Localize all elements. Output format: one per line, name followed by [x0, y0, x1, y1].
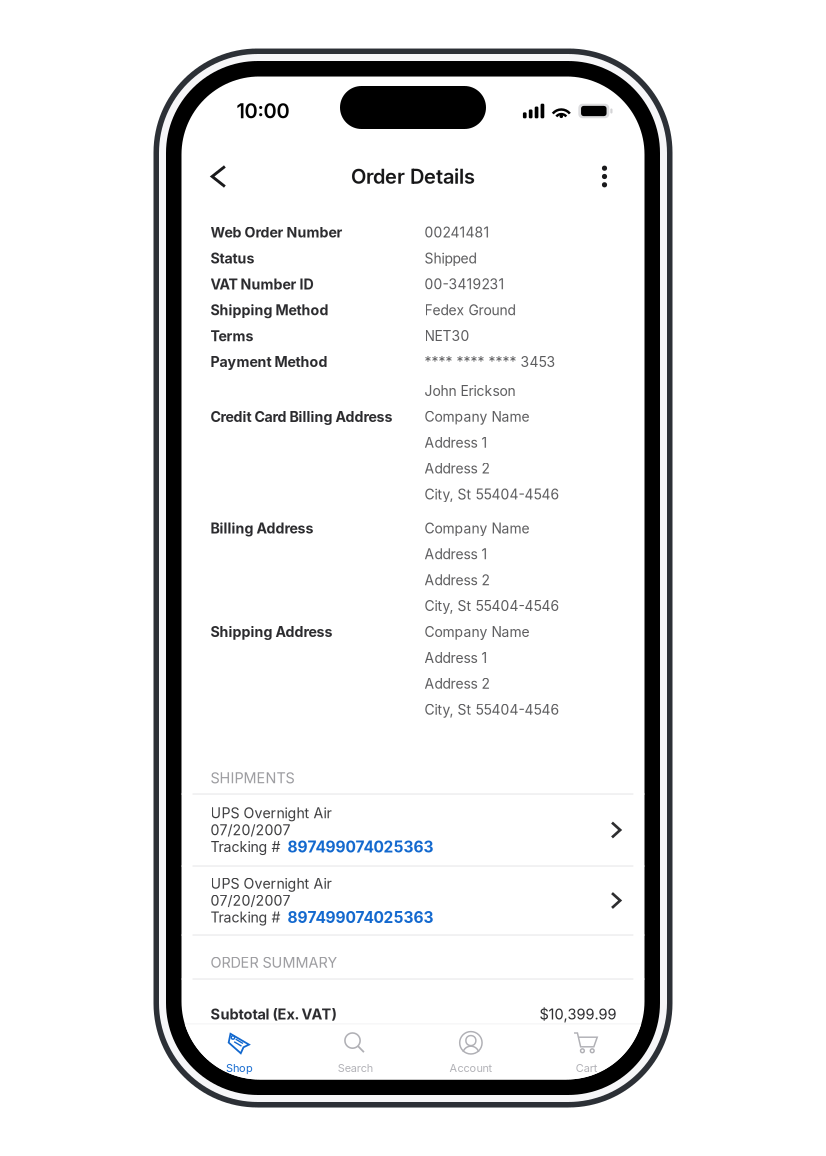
staticText: 07/20/2007 — [210, 892, 290, 909]
staticText: Address 2 — [424, 572, 489, 589]
staticText: Address 2 — [424, 675, 489, 692]
button[interactable]: Account — [413, 1024, 529, 1079]
staticText: Payment Method — [210, 353, 327, 370]
staticText: Address 2 — [424, 460, 489, 477]
staticText: Order Details — [351, 164, 475, 189]
button[interactable]: Back — [195, 153, 241, 199]
staticText: 07/20/2007 — [210, 821, 290, 838]
staticText: City, St 55404-4546 — [424, 486, 559, 503]
staticText: Terms — [210, 327, 253, 345]
button[interactable]: Cart — [529, 1024, 645, 1079]
button[interactable]: Shop — [181, 1024, 297, 1079]
staticText: Address 1 — [424, 434, 487, 451]
staticText: City, St 55404-4546 — [424, 701, 559, 718]
staticText: **** **** **** 3453 — [424, 354, 555, 370]
staticText: Shipped — [424, 250, 476, 267]
staticText: Tracking # — [210, 909, 280, 926]
staticText: Fedex Ground — [424, 302, 515, 319]
staticText: Shop — [226, 1061, 253, 1075]
staticText: ORDER SUMMARY — [210, 954, 337, 971]
button[interactable]: Search — [297, 1024, 413, 1079]
staticText: Company Name — [424, 408, 529, 425]
button[interactable]: UPS Overnight Air — [181, 794, 644, 866]
button[interactable]: UPS Overnight Air — [181, 866, 644, 935]
staticText: 897499074025363 — [287, 837, 433, 856]
staticText: Web Order Number — [210, 224, 342, 241]
staticText: City, St 55404-4546 — [424, 598, 559, 614]
staticText: Shipping Address — [210, 623, 332, 640]
staticText: $10,399.99 — [539, 1005, 616, 1023]
staticText: UPS Overnight Air — [210, 875, 331, 892]
staticText: 10:00 — [236, 99, 289, 123]
staticText: John Erickson — [424, 382, 515, 399]
staticText: Company Name — [424, 520, 529, 537]
staticText: 00-3419231 — [424, 276, 504, 293]
staticText: Address 1 — [424, 649, 487, 666]
staticText: 897499074025363 — [287, 908, 433, 927]
staticText: Billing Address — [210, 520, 313, 537]
staticText: Tracking # — [210, 838, 280, 855]
staticText: Company Name — [424, 624, 529, 640]
staticText: Status — [210, 250, 254, 267]
staticText: 00241481 — [424, 224, 489, 241]
staticText: Account — [449, 1061, 492, 1075]
staticText: Shipping Method — [210, 302, 328, 319]
staticText: UPS Overnight Air — [210, 805, 331, 822]
staticText: Subtotal (Ex. VAT) — [210, 1005, 336, 1023]
staticText: Credit Card Billing Address — [210, 408, 392, 425]
staticText: Cart — [576, 1061, 598, 1075]
staticText: SHIPMENTS — [210, 769, 294, 787]
button[interactable]: More options — [581, 153, 627, 199]
staticText: Search — [338, 1061, 373, 1075]
staticText: VAT Number ID — [210, 276, 313, 293]
staticText: Address 1 — [424, 546, 487, 563]
staticText: NET30 — [424, 328, 469, 344]
